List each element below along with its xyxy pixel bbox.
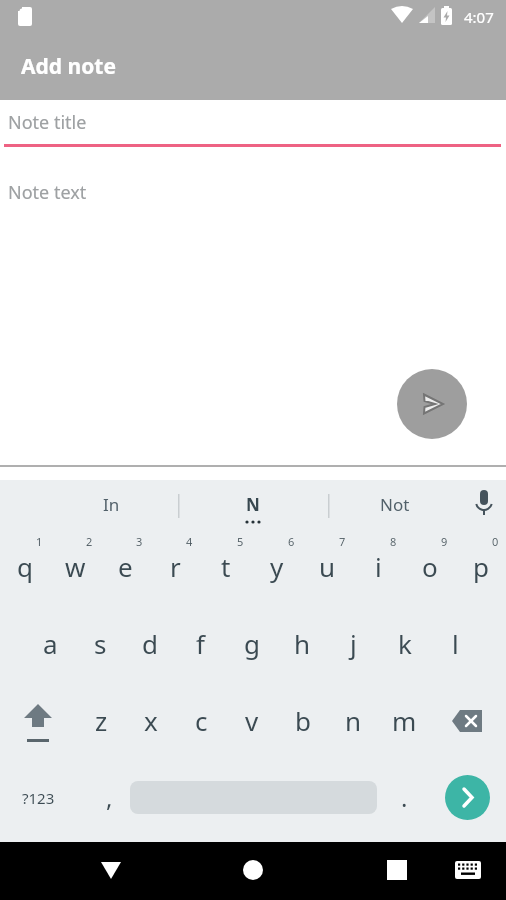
staticText: s [94, 626, 107, 661]
button[interactable]: m [379, 682, 430, 759]
staticText: v [245, 703, 259, 738]
button[interactable]: k [379, 605, 430, 682]
staticText: b [295, 703, 311, 738]
staticText: 9 [441, 534, 448, 549]
button[interactable]: a [25, 605, 75, 682]
staticText: w [65, 549, 86, 584]
staticText: 7 [339, 534, 346, 549]
staticText: h [294, 626, 311, 661]
button[interactable]: x [126, 682, 176, 759]
staticText: k [398, 626, 412, 661]
button[interactable]: Note text [8, 147, 506, 237]
staticText: 8 [390, 534, 397, 549]
button[interactable]: l [430, 605, 481, 682]
button[interactable]: g [226, 605, 277, 682]
staticText: Note text [8, 180, 87, 205]
staticText: , [106, 781, 113, 814]
staticText: l [452, 626, 459, 661]
button[interactable]: 4 [150, 528, 200, 605]
staticText: q [17, 549, 33, 584]
staticText: o [422, 549, 438, 584]
button[interactable]: b [277, 682, 328, 759]
staticText: Add note [21, 52, 116, 81]
staticText: 1 [36, 534, 43, 549]
staticText: 6 [288, 534, 295, 549]
button[interactable]: . [377, 759, 432, 836]
staticText: c [195, 703, 208, 738]
button[interactable]: c [176, 682, 226, 759]
button[interactable] [76, 842, 146, 900]
button[interactable]: 5 [200, 528, 251, 605]
staticText: e [118, 549, 133, 584]
button[interactable]: d [125, 605, 175, 682]
staticText: 3 [136, 534, 143, 549]
button[interactable]: 2 [50, 528, 100, 605]
staticText: In [103, 493, 120, 516]
button[interactable]: Add note [0, 33, 506, 100]
staticText: Not [380, 493, 410, 516]
button[interactable] [0, 682, 76, 759]
staticText: 2 [86, 534, 93, 549]
staticText: p [473, 549, 489, 584]
staticText: d [142, 626, 158, 661]
staticText: y [270, 549, 284, 584]
staticText: . [401, 781, 408, 814]
staticText: j [350, 626, 357, 661]
button[interactable]: , [88, 759, 130, 836]
button[interactable] [430, 682, 506, 759]
button[interactable]: n [328, 682, 379, 759]
button[interactable] [445, 775, 490, 820]
staticText: 0 [492, 534, 499, 549]
button[interactable]: 1 [0, 528, 50, 605]
button[interactable]: ?123 [0, 759, 76, 836]
staticText: Note title [8, 110, 87, 135]
button[interactable]: f [175, 605, 226, 682]
staticText: u [319, 549, 336, 584]
staticText: i [375, 549, 382, 584]
staticText: ?123 [22, 788, 55, 808]
button[interactable]: In [60, 480, 162, 528]
staticText: 4 [186, 534, 193, 549]
staticText: g [244, 626, 260, 661]
staticText: 5 [237, 534, 244, 549]
button[interactable]: Note title [8, 100, 506, 144]
staticText: z [95, 703, 108, 738]
staticText: 4:07 [464, 7, 494, 27]
button[interactable]: 8 [353, 528, 404, 605]
staticText: m [392, 703, 417, 738]
staticText: r [170, 549, 181, 584]
button[interactable] [360, 842, 430, 900]
button[interactable]: 0 [455, 528, 506, 605]
staticText: a [43, 626, 58, 661]
button[interactable]: s [75, 605, 125, 682]
button[interactable] [218, 842, 288, 900]
button[interactable]: 9 [404, 528, 455, 605]
button[interactable] [440, 842, 496, 900]
button[interactable]: z [76, 682, 126, 759]
button[interactable]: Not [344, 480, 446, 528]
staticText: x [144, 703, 158, 738]
button[interactable] [397, 369, 467, 439]
staticText: t [221, 549, 231, 584]
button[interactable]: N [202, 480, 304, 528]
button[interactable]: h [277, 605, 328, 682]
staticText: f [196, 626, 205, 661]
button[interactable]: 3 [100, 528, 150, 605]
button[interactable]: v [226, 682, 277, 759]
button[interactable]: j [328, 605, 379, 682]
staticText: n [345, 703, 362, 738]
button[interactable]: 6 [251, 528, 302, 605]
button[interactable]: 7 [302, 528, 353, 605]
staticText: N [246, 493, 260, 516]
